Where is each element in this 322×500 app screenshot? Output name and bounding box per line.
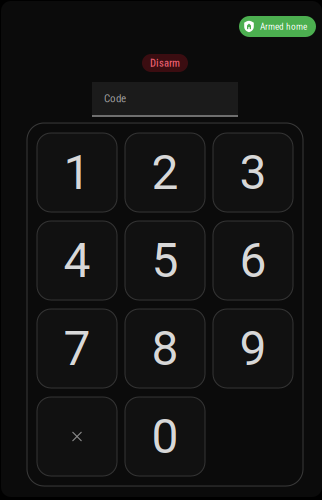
button[interactable]: Armed home: [239, 16, 316, 37]
button[interactable]: 4: [37, 221, 117, 300]
button[interactable]: Disarm: [142, 54, 188, 72]
staticText: 5: [151, 232, 178, 289]
button[interactable]: 8: [125, 309, 205, 388]
staticText: 0: [151, 408, 178, 465]
staticText: 6: [239, 232, 266, 289]
staticText: 3: [239, 144, 266, 201]
staticText: 1: [63, 144, 90, 201]
staticText: 8: [151, 320, 178, 377]
staticText: Code: [104, 92, 126, 105]
button[interactable]: Delete: [37, 397, 117, 476]
button[interactable]: 3: [213, 133, 293, 212]
staticText: 4: [63, 232, 90, 289]
staticText: Disarm: [150, 57, 180, 69]
button[interactable]: 0: [125, 397, 205, 476]
staticText: 7: [63, 320, 90, 377]
staticText: 9: [239, 320, 266, 377]
staticText: 2: [151, 144, 178, 201]
button[interactable]: 9: [213, 309, 293, 388]
button[interactable]: 1: [37, 133, 117, 212]
button[interactable]: 2: [125, 133, 205, 212]
button[interactable]: 6: [213, 221, 293, 300]
button[interactable]: Code: [92, 82, 238, 117]
button[interactable]: 5: [125, 221, 205, 300]
button[interactable]: 7: [37, 309, 117, 388]
staticText: Armed home: [260, 21, 307, 32]
